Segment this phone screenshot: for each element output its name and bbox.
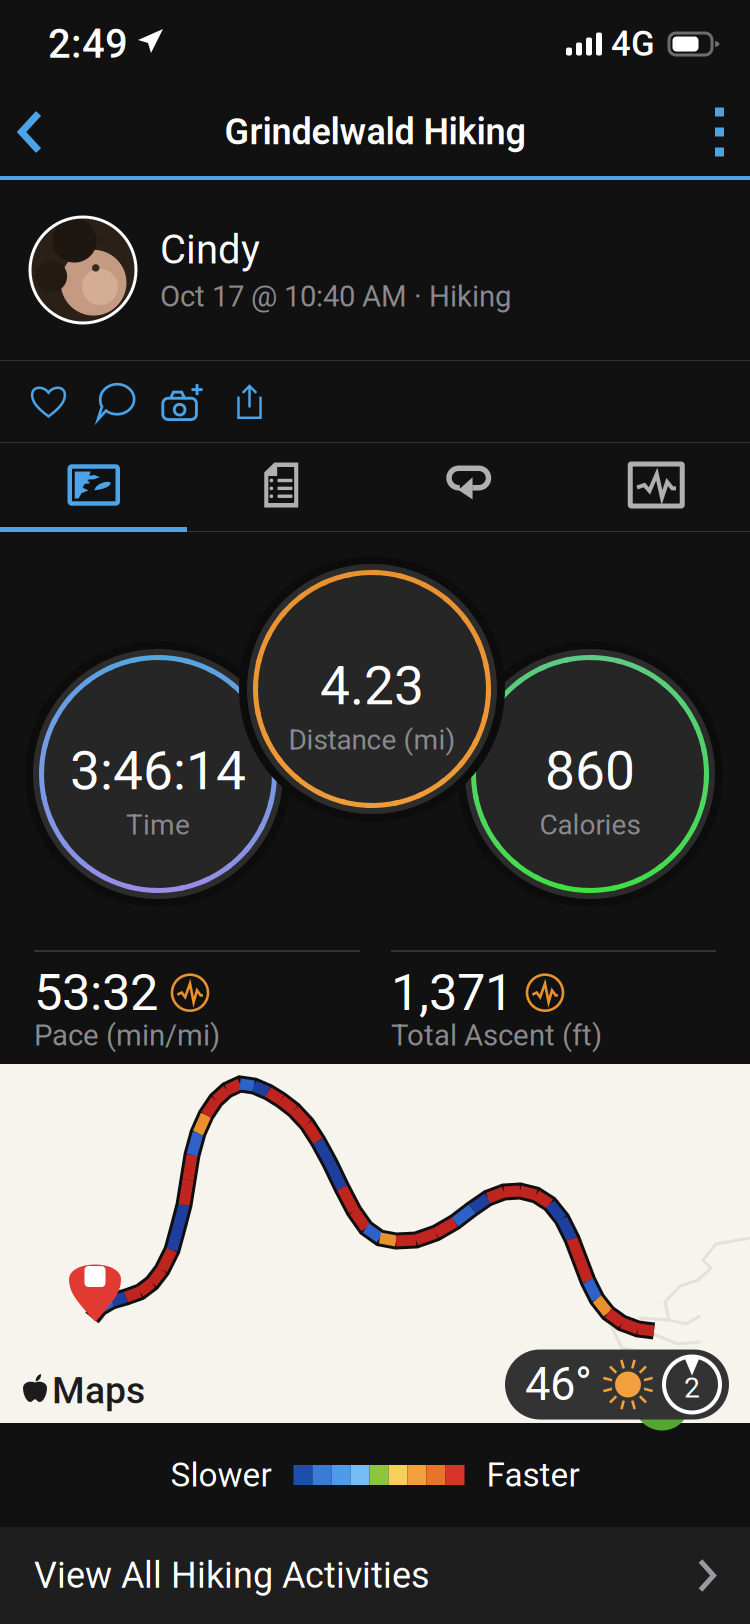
button[interactable]: Laps [375, 443, 562, 527]
staticText: Faster [486, 1455, 579, 1495]
staticText: Calories [539, 809, 640, 841]
staticText: Distance (mi) [288, 724, 455, 756]
button[interactable]: Add photo [149, 361, 216, 441]
staticText: Grindelwald Hiking [224, 111, 525, 153]
button[interactable]: Share [216, 361, 283, 441]
staticText: Time [126, 809, 190, 841]
staticText: Total Ascent (ft) [391, 1018, 602, 1053]
staticText: Maps [52, 1369, 145, 1412]
staticText: 46° [525, 1358, 592, 1411]
staticText: View All Hiking Activities [34, 1554, 430, 1597]
staticText: 4.23 [320, 655, 424, 717]
staticText: Cindy [160, 226, 260, 273]
staticText: 53:32 [34, 963, 158, 1022]
button[interactable]: View All Hiking Activities [0, 1527, 750, 1624]
staticText: Oct 17 @ 10:40 AM · Hiking [160, 279, 511, 314]
staticText: 2:49 [48, 21, 128, 67]
button[interactable]: Like [15, 361, 82, 441]
button[interactable]: Map [0, 443, 187, 527]
staticText: 860 [545, 740, 635, 802]
staticText: Pace (min/mi) [34, 1018, 220, 1053]
button[interactable]: More options [685, 87, 750, 176]
button[interactable]: Comment [82, 361, 149, 441]
button[interactable]: Details [187, 443, 375, 527]
button[interactable]: Charts [562, 443, 750, 527]
staticText: 2 [684, 1371, 700, 1404]
staticText: Slower [170, 1455, 271, 1495]
button[interactable]: Back [0, 88, 70, 176]
staticText: 4G [611, 24, 655, 64]
staticText: 1,371 [391, 963, 513, 1022]
staticText: 3:46:14 [70, 740, 246, 802]
